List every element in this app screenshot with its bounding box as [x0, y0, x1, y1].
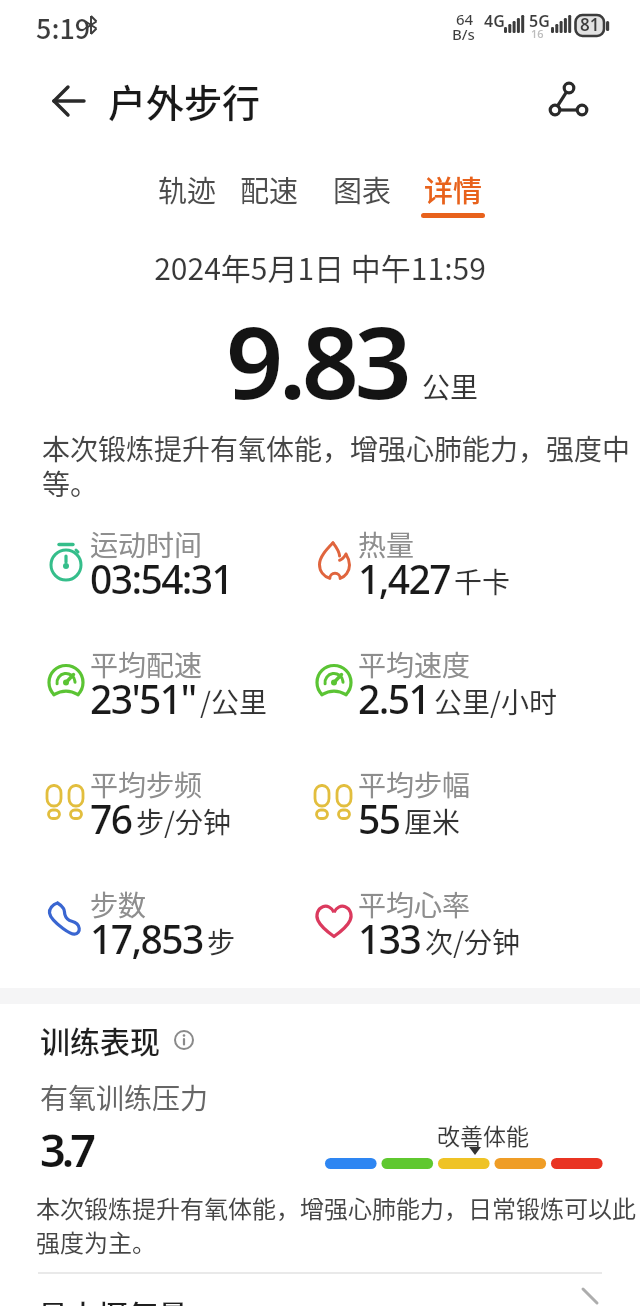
staticText: 81 [580, 13, 600, 36]
staticText: 图表 [333, 168, 392, 210]
staticText: 5:19 [36, 8, 91, 47]
staticText: 平均步幅 [358, 764, 471, 805]
staticText: 步数 [90, 884, 147, 925]
button[interactable] [172, 1028, 196, 1052]
staticText: 64 [456, 9, 474, 29]
staticText: 平均速度 [358, 644, 471, 685]
staticText: 配速 [240, 168, 299, 210]
button[interactable] [538, 76, 590, 124]
button[interactable]: 最大摄氧量 [0, 1280, 640, 1306]
button[interactable]: 详情 [413, 166, 493, 212]
staticText: 公里/小时 [434, 681, 557, 722]
staticText: 23'51" [90, 672, 196, 725]
staticText: 改善体能 [437, 1118, 529, 1151]
staticText: 最大摄氧量 [38, 1292, 188, 1306]
staticText: B/s [452, 24, 475, 44]
button[interactable]: 轨迹 [147, 166, 227, 212]
staticText: 户外步行 [108, 73, 261, 128]
staticText: 次/分钟 [425, 921, 520, 962]
button[interactable]: 配速 [229, 166, 309, 212]
staticText: 平均配速 [90, 644, 203, 685]
staticText: 133 [358, 912, 421, 965]
staticText: 有氧训练压力 [40, 1077, 209, 1118]
staticText: 17,853 [90, 912, 203, 965]
staticText: 热量 [358, 524, 415, 565]
staticText: 55 [358, 792, 400, 845]
staticText: 运动时间 [90, 524, 203, 565]
staticText: 76 [90, 792, 132, 845]
staticText: 5G [529, 10, 550, 32]
staticText: 03:54:31 [90, 552, 233, 605]
staticText: 9.83 [226, 292, 408, 428]
staticText: 训练表现 [40, 1018, 160, 1061]
button[interactable] [44, 80, 92, 124]
staticText: 步 [207, 921, 236, 962]
staticText: 2.51 [358, 672, 430, 725]
staticText: 厘米 [404, 801, 461, 842]
staticText: 详情 [424, 168, 483, 210]
staticText: 1,427 [358, 552, 450, 605]
staticText: 千卡 [454, 561, 511, 602]
staticText: 16 [531, 26, 544, 41]
staticText: 3.7 [40, 1119, 92, 1180]
staticText: /公里 [200, 681, 267, 722]
staticText: 4G [484, 10, 505, 32]
button[interactable]: 图表 [322, 166, 402, 212]
staticText: 平均步频 [90, 764, 203, 805]
staticText: 本次锻炼提升有氧体能，增强心肺能力，强度中等。 [42, 428, 640, 503]
staticText: 轨迹 [158, 168, 217, 210]
staticText: 本次锻炼提升有氧体能，增强心肺能力，日常锻炼可以此强度为主。 [36, 1190, 640, 1259]
staticText: 步/分钟 [136, 801, 231, 842]
staticText: 平均心率 [358, 884, 471, 925]
staticText: 公里 [422, 366, 479, 407]
staticText: 2024年5月1日 中午11:59 [0, 245, 640, 288]
